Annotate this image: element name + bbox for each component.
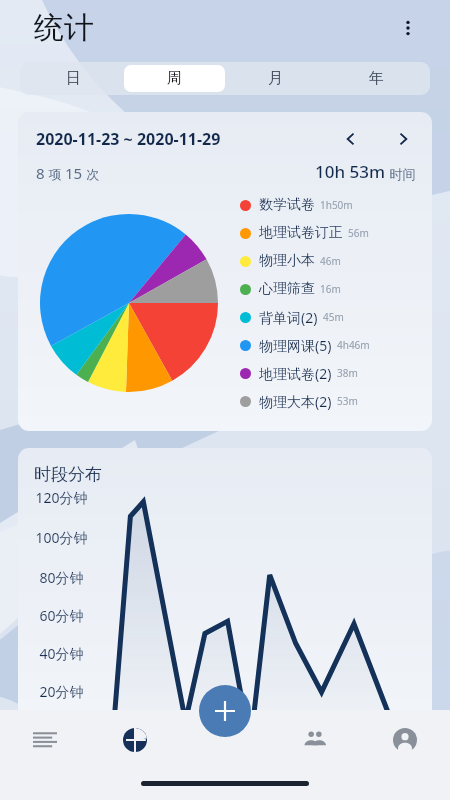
button[interactable]: 地理试卷(2) — [240, 359, 424, 387]
staticText: 45m — [323, 310, 344, 324]
staticText: 1h50m — [320, 198, 353, 212]
staticText: 2020-11-23 ~ 2020-11-29 — [36, 128, 221, 150]
button[interactable]: 年 — [326, 65, 427, 92]
staticText: 地理试卷(2) — [259, 364, 332, 383]
staticText: 心理筛查 — [259, 280, 315, 298]
button[interactable]: 周 — [124, 65, 225, 92]
button[interactable]: 物理网课(5) — [240, 331, 424, 359]
staticText: 4h46m — [337, 338, 370, 352]
staticText: 日 — [66, 69, 81, 88]
button[interactable]: Next week — [390, 126, 416, 152]
staticText: 时间 — [386, 165, 416, 183]
staticText: 10h 53m — [315, 160, 386, 183]
staticText: 8 — [36, 163, 45, 183]
button[interactable]: Add — [199, 685, 251, 737]
staticText: 16m — [320, 282, 341, 296]
staticText: 60分钟 — [39, 606, 84, 625]
staticText: 20分钟 — [39, 682, 84, 701]
staticText: 时段分布 — [34, 464, 102, 485]
staticText: 周 — [167, 69, 182, 88]
button[interactable]: 数学试卷 — [240, 191, 424, 219]
button[interactable]: 物理大本(2) — [240, 387, 424, 415]
button[interactable]: 日 — [23, 65, 124, 92]
staticText: 53m — [337, 394, 358, 408]
staticText: 物理小本 — [259, 252, 315, 270]
staticText: 100分钟 — [35, 528, 88, 547]
button[interactable]: Previous week — [338, 126, 364, 152]
staticText: 年 — [369, 69, 384, 88]
staticText: 统计 — [34, 9, 94, 47]
staticText: 46m — [320, 254, 341, 268]
staticText: 物理大本(2) — [259, 392, 332, 411]
staticText: 次 — [83, 165, 100, 183]
button[interactable]: Friends — [270, 710, 360, 800]
staticText: 15 — [65, 163, 83, 183]
button[interactable]: Statistics — [90, 710, 180, 800]
button[interactable]: Profile — [360, 710, 450, 800]
staticText: 地理试卷订正 — [259, 224, 343, 242]
staticText: 40分钟 — [39, 644, 84, 663]
staticText: 38m — [337, 366, 358, 380]
staticText: 80分钟 — [39, 568, 84, 587]
staticText: 背单词(2) — [259, 308, 318, 327]
button[interactable]: 物理小本 — [240, 247, 424, 275]
button[interactable]: List — [0, 710, 90, 800]
button[interactable]: 背单词(2) — [240, 303, 424, 331]
button[interactable]: 地理试卷订正 — [240, 219, 424, 247]
staticText: 项 — [45, 165, 65, 183]
button[interactable]: More options — [390, 10, 426, 46]
staticText: 物理网课(5) — [259, 336, 332, 355]
staticText: 120分钟 — [35, 488, 88, 507]
staticText: 数学试卷 — [259, 196, 315, 214]
staticText: 月 — [268, 69, 283, 88]
staticText: 56m — [348, 226, 369, 240]
button[interactable]: 月 — [225, 65, 326, 92]
button[interactable]: 心理筛查 — [240, 275, 424, 303]
